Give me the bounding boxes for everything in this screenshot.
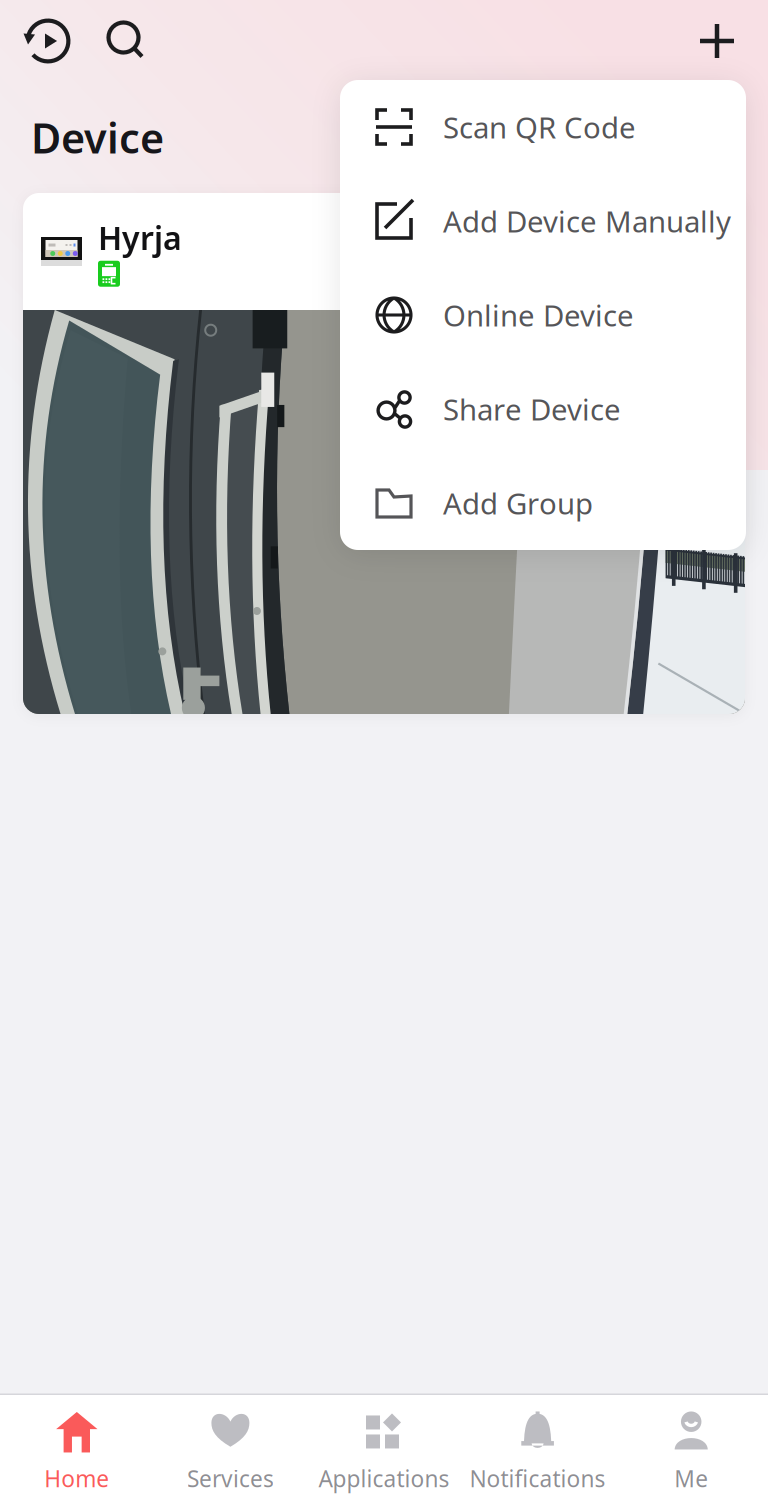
staticText: Add Device Manually — [443, 201, 731, 240]
button[interactable]: Scan QR Code — [340, 80, 746, 174]
staticText: Device — [31, 110, 164, 165]
button[interactable]: Notifications — [461, 1394, 614, 1507]
staticText: Notifications — [470, 1463, 606, 1493]
button[interactable]: Services — [154, 1394, 307, 1507]
button[interactable]: Add — [694, 18, 740, 64]
button[interactable]: Add Group — [340, 456, 746, 550]
staticText: Scan QR Code — [443, 107, 636, 146]
button[interactable]: Playback — [26, 19, 70, 63]
button[interactable]: Add Device Manually — [340, 174, 746, 268]
button[interactable]: Applications — [307, 1394, 461, 1507]
staticText: Applications — [318, 1463, 449, 1493]
button[interactable]: Search — [104, 19, 148, 63]
button[interactable]: Me — [614, 1394, 768, 1507]
staticText: Me — [674, 1463, 708, 1493]
staticText: Add Group — [443, 483, 593, 522]
staticText: Hyrja — [98, 216, 182, 259]
staticText: Online Device — [443, 295, 634, 334]
button[interactable]: Home — [0, 1394, 154, 1507]
staticText: Home — [44, 1463, 109, 1493]
button[interactable]: Share Device — [340, 362, 746, 456]
staticText: Services — [187, 1463, 274, 1493]
staticText: Share Device — [443, 389, 621, 428]
button[interactable]: Online Device — [340, 268, 746, 362]
